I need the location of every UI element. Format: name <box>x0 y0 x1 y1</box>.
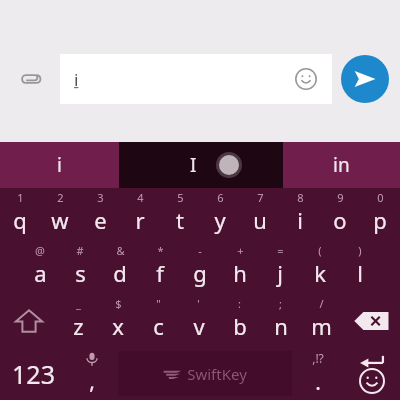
button[interactable]: 2 <box>40 188 80 241</box>
button[interactable]: / <box>301 294 342 347</box>
staticText: k <box>314 258 326 288</box>
staticText: 8 <box>297 190 304 205</box>
button[interactable]: & <box>100 241 140 294</box>
button[interactable]: 9 <box>320 188 360 241</box>
button[interactable]: Shift <box>0 294 58 347</box>
button[interactable]: 6 <box>200 188 240 241</box>
staticText: ' <box>197 296 200 311</box>
staticText: u <box>253 205 267 235</box>
button[interactable]: $ <box>98 294 138 347</box>
staticText: ( <box>318 243 322 258</box>
staticText: = <box>277 243 284 258</box>
staticText: g <box>193 258 207 288</box>
staticText: i <box>74 68 79 91</box>
button[interactable]: ) <box>340 241 380 294</box>
staticText: in <box>333 152 350 178</box>
staticText: + <box>237 243 244 258</box>
staticText: f <box>156 258 164 288</box>
button[interactable]: Period and punctuation <box>292 347 344 400</box>
staticText: e <box>94 205 107 235</box>
staticText: t <box>176 205 184 235</box>
staticText: ; <box>279 296 282 311</box>
button[interactable]: 4 <box>120 188 160 241</box>
button[interactable]: " <box>138 294 178 347</box>
staticText: m <box>311 311 332 341</box>
staticText: w <box>51 205 69 235</box>
staticText: @ <box>35 243 45 258</box>
button[interactable]: i <box>0 142 119 188</box>
staticText: * <box>157 243 164 258</box>
staticText: 123 <box>12 357 55 391</box>
staticText: 1 <box>17 190 24 205</box>
button[interactable]: 8 <box>280 188 320 241</box>
button[interactable]: I <box>119 142 283 188</box>
staticText: i <box>297 205 303 235</box>
staticText: 3 <box>97 190 104 205</box>
staticText: i <box>57 152 62 178</box>
button[interactable]: Space <box>118 351 292 396</box>
staticText: v <box>193 311 205 341</box>
button[interactable]: _ <box>58 294 98 347</box>
staticText: r <box>135 205 145 235</box>
button[interactable]: Emoji <box>288 61 324 97</box>
staticText: 9 <box>337 190 344 205</box>
staticText: " <box>156 296 161 311</box>
button[interactable]: 5 <box>160 188 200 241</box>
staticText: y <box>214 205 226 235</box>
button[interactable]: i <box>60 54 332 104</box>
button[interactable]: 7 <box>240 188 280 241</box>
button[interactable]: @ <box>20 241 60 294</box>
staticText: . <box>315 368 321 397</box>
staticText: 5 <box>177 190 184 205</box>
staticText: 0 <box>377 190 384 205</box>
button[interactable]: ( <box>300 241 340 294</box>
button[interactable]: in <box>283 142 400 188</box>
staticText: : <box>238 296 241 311</box>
button[interactable]: Emoji and enter <box>344 347 400 400</box>
button[interactable]: 3 <box>80 188 120 241</box>
button[interactable]: : <box>219 294 260 347</box>
staticText: o <box>333 205 347 235</box>
staticText: z <box>73 311 84 341</box>
staticText: - <box>198 243 202 258</box>
staticText: 7 <box>257 190 264 205</box>
staticText: a <box>34 258 47 288</box>
staticText: n <box>274 311 288 341</box>
staticText: s <box>75 258 86 288</box>
staticText: 2 <box>57 190 64 205</box>
staticText: $ <box>115 296 122 311</box>
staticText: ) <box>358 243 362 258</box>
button[interactable]: ' <box>178 294 219 347</box>
staticText: b <box>233 311 247 341</box>
button[interactable]: Comma and voice input <box>66 347 118 400</box>
button[interactable]: ; <box>260 294 301 347</box>
staticText: c <box>153 311 164 341</box>
staticText: q <box>13 205 27 235</box>
staticText: p <box>373 205 387 235</box>
staticText: 6 <box>217 190 224 205</box>
button[interactable]: * <box>140 241 180 294</box>
staticText: # <box>76 243 84 258</box>
button[interactable]: Backspace <box>342 294 400 347</box>
button[interactable]: 0 <box>360 188 400 241</box>
staticText: l <box>357 258 363 288</box>
button[interactable]: Send <box>341 55 389 103</box>
button[interactable]: + <box>220 241 260 294</box>
button[interactable]: 1 <box>0 188 40 241</box>
staticText: ,!? <box>312 350 324 366</box>
staticText: x <box>112 311 124 341</box>
staticText: / <box>319 296 324 311</box>
button[interactable]: # <box>60 241 100 294</box>
button[interactable]: - <box>180 241 220 294</box>
staticText: , <box>89 367 95 396</box>
staticText: h <box>233 258 247 288</box>
staticText: & <box>116 243 125 258</box>
button[interactable]: = <box>260 241 300 294</box>
staticText: 4 <box>137 190 144 205</box>
staticText: _ <box>76 296 81 311</box>
button[interactable]: Attach <box>6 54 56 104</box>
staticText: I <box>190 152 197 178</box>
staticText: j <box>277 258 283 288</box>
button[interactable]: 123 <box>0 347 66 400</box>
staticText: d <box>113 258 127 288</box>
